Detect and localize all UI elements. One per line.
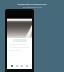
staticText: eco commerce ui kit [23,6,42,9]
staticText: Sustainable shopping app [17,2,47,5]
button[interactable] [13,39,27,42]
